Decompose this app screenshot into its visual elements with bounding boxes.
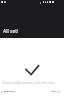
staticText: NEXT — [51, 90, 57, 93]
button[interactable]: Previous — [0, 88, 16, 95]
other: Next — [58, 91, 60, 93]
staticText: PREVIOUS — [4, 90, 15, 93]
button[interactable]: NEXT — [50, 88, 64, 95]
other: Previous — [1, 91, 3, 93]
staticText: All set! — [3, 28, 19, 35]
staticText: Tap the button below to finish the setup… — [2, 81, 56, 85]
